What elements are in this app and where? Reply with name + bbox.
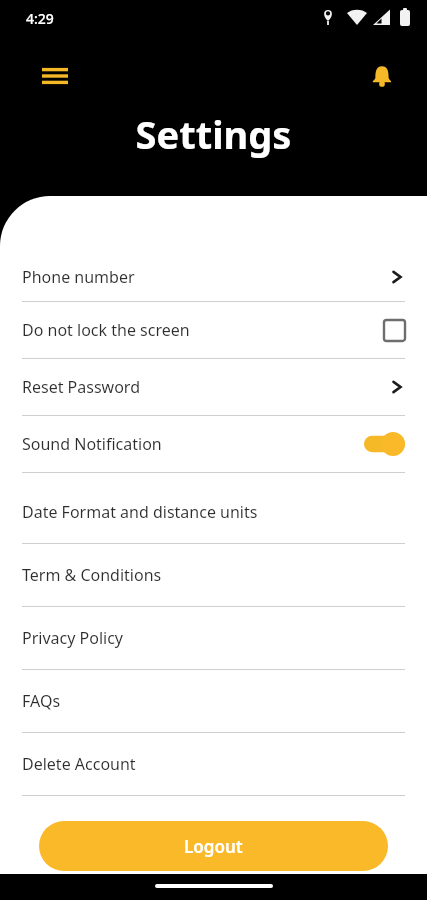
button[interactable]: Phone number <box>0 253 427 301</box>
staticText: Phone number <box>22 266 389 288</box>
staticText: Logout <box>184 835 243 858</box>
button[interactable]: Term & Conditions <box>0 544 427 606</box>
staticText: Settings <box>0 108 427 160</box>
button[interactable]: Logout <box>39 821 388 871</box>
staticText: Privacy Policy <box>22 627 405 649</box>
button[interactable]: Do not lock the screen <box>0 302 427 358</box>
staticText: Term & Conditions <box>22 564 405 586</box>
staticText: Date Format and distance units <box>22 501 405 523</box>
button[interactable]: Delete Account <box>0 733 427 795</box>
staticText: FAQs <box>22 690 405 712</box>
staticText: Do not lock the screen <box>22 319 384 341</box>
staticText: Reset Password <box>22 376 389 398</box>
button[interactable]: FAQs <box>0 670 427 732</box>
staticText: Delete Account <box>22 753 405 775</box>
button[interactable]: Privacy Policy <box>0 607 427 669</box>
staticText: Sound Notification <box>22 433 364 455</box>
button[interactable]: Open navigation menu <box>32 53 78 99</box>
button[interactable]: Notifications <box>360 54 404 98</box>
button[interactable]: Reset Password <box>0 359 427 415</box>
button[interactable]: Sound notification toggle, on <box>364 432 405 456</box>
button[interactable]: Sound Notification <box>0 416 427 472</box>
staticText: 4:29 <box>26 9 54 28</box>
button[interactable]: Date Format and distance units <box>0 481 427 543</box>
button[interactable]: Do not lock the screen checkbox <box>384 320 405 341</box>
